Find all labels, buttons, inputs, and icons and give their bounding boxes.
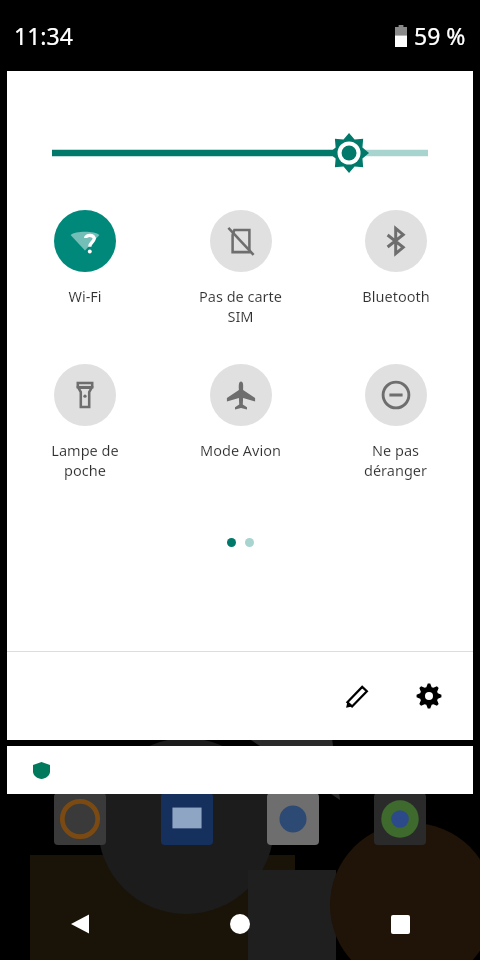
button[interactable]: Mode Avion: [163, 364, 318, 460]
button[interactable]: Settings: [401, 668, 457, 724]
button[interactable]: Ne pas déranger: [318, 364, 473, 480]
button[interactable]: Bluetooth: [318, 210, 473, 306]
button[interactable]: Wi-Fi: [7, 210, 163, 306]
button[interactable]: Home: [160, 888, 320, 960]
staticText: 59 %: [414, 20, 466, 51]
staticText: Pas de carte SIM: [199, 286, 282, 326]
staticText: Mode Avion: [200, 440, 281, 460]
button[interactable]: App: [54, 793, 106, 845]
button[interactable]: [7, 746, 473, 794]
button[interactable]: Pas de carte SIM: [163, 210, 318, 326]
button[interactable]: App: [374, 793, 426, 845]
staticText: Bluetooth: [362, 286, 430, 306]
button[interactable]: App: [161, 793, 213, 845]
button[interactable]: Brightness: [7, 131, 473, 175]
staticText: Ne pas déranger: [364, 440, 427, 480]
button[interactable]: Edit: [329, 668, 385, 724]
button[interactable]: Recent apps: [320, 888, 480, 960]
button[interactable]: Lampe de poche: [7, 364, 163, 480]
button[interactable]: App: [267, 793, 319, 845]
staticText: Wi-Fi: [68, 286, 102, 306]
staticText: Lampe de poche: [51, 440, 119, 480]
staticText: 11:34: [14, 20, 73, 51]
button[interactable]: Back: [0, 888, 160, 960]
